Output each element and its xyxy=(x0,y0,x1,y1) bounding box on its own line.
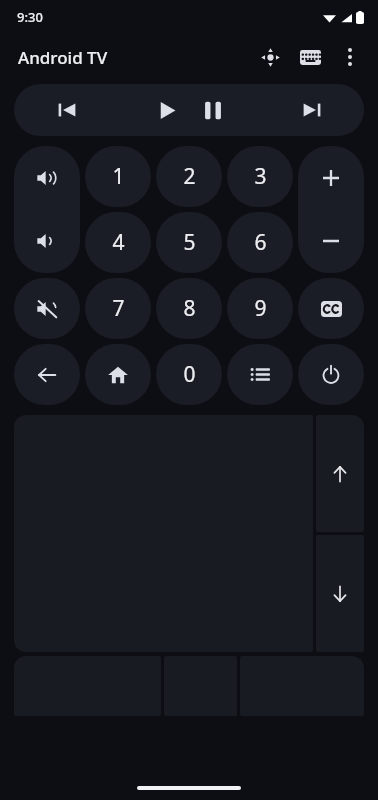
button[interactable]: Keyboard xyxy=(290,37,330,77)
button[interactable]: Mute xyxy=(14,278,80,339)
button[interactable]: Back xyxy=(14,344,80,405)
staticText: 3 xyxy=(254,162,267,191)
button[interactable]: 7 xyxy=(85,278,151,339)
button[interactable]: 6 xyxy=(227,212,293,273)
staticText: 1 xyxy=(112,162,125,191)
button[interactable]: D-pad xyxy=(250,37,290,77)
button[interactable]: 4 xyxy=(85,212,151,273)
staticText: 5 xyxy=(183,228,196,257)
button[interactable]: 1 xyxy=(85,146,151,207)
staticText: 9 xyxy=(254,294,267,323)
button[interactable]: Closed captions xyxy=(298,278,364,339)
button[interactable]: Home xyxy=(85,344,151,405)
button[interactable]: 9 xyxy=(227,278,293,339)
button[interactable]: Pause xyxy=(190,87,236,133)
staticText: 9:30 xyxy=(17,8,43,26)
button[interactable]: Power xyxy=(298,344,364,405)
button[interactable]: Previous xyxy=(14,84,119,136)
button[interactable]: 3 xyxy=(227,146,293,207)
button[interactable]: Menu xyxy=(227,344,293,405)
staticText: 4 xyxy=(112,228,125,257)
button[interactable]: Channel down xyxy=(298,209,364,273)
button[interactable]: Volume down xyxy=(14,209,80,273)
button[interactable]: 5 xyxy=(156,212,222,273)
staticText: 6 xyxy=(254,228,267,257)
button[interactable]: 2 xyxy=(156,146,222,207)
button[interactable]: 0 xyxy=(156,344,222,405)
staticText: 0 xyxy=(183,360,196,389)
staticText: 2 xyxy=(183,162,196,191)
button[interactable]: 8 xyxy=(156,278,222,339)
button[interactable]: More options xyxy=(330,37,370,77)
button[interactable]: Play xyxy=(144,87,190,133)
button[interactable]: Channel up xyxy=(298,146,364,209)
button[interactable]: Scroll up xyxy=(316,415,364,532)
button[interactable]: Scroll down xyxy=(316,535,364,652)
staticText: Android TV xyxy=(18,46,108,69)
staticText: 7 xyxy=(112,294,125,323)
button[interactable]: Next xyxy=(260,84,364,136)
button[interactable]: Volume up xyxy=(14,146,80,209)
staticText: 8 xyxy=(183,294,196,323)
